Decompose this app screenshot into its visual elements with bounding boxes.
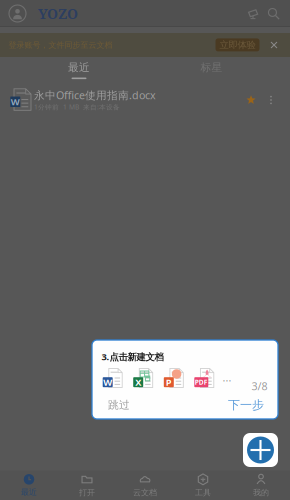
staticText: 永中Office使用指南.docx xyxy=(34,88,156,102)
button[interactable]: 我的 xyxy=(232,470,290,500)
staticText: W xyxy=(103,376,112,388)
staticText: 云文档 xyxy=(133,488,157,497)
button[interactable]: 最近 xyxy=(0,470,58,500)
staticText: X xyxy=(135,376,141,388)
button[interactable]: Search xyxy=(263,1,285,27)
staticText: 登录账号，文件同步至云文档 xyxy=(8,40,112,50)
staticText: YOZO xyxy=(38,4,78,23)
button[interactable]: 下一步 xyxy=(224,397,264,413)
button[interactable]: 立即体验 xyxy=(215,38,259,51)
button[interactable]: 跳过 xyxy=(108,397,138,413)
button[interactable]: 云文档 xyxy=(116,470,174,500)
staticText: 3/8 xyxy=(251,379,267,393)
staticText: 下一步 xyxy=(228,398,264,412)
staticText: W xyxy=(11,96,20,108)
staticText: P xyxy=(166,376,172,388)
button[interactable]: New Word document xyxy=(103,368,125,392)
button[interactable]: W xyxy=(0,82,290,118)
button[interactable]: 最近 xyxy=(12,58,145,82)
staticText: 跳过 xyxy=(108,398,130,411)
button[interactable]: New document xyxy=(243,433,278,467)
button[interactable]: New PDF xyxy=(194,368,216,392)
button[interactable]: 打开 xyxy=(58,470,116,500)
staticText: 立即体验 xyxy=(219,39,255,51)
button[interactable]: More document types xyxy=(219,368,235,392)
staticText: PDF xyxy=(195,378,208,387)
staticText: 打开 xyxy=(79,488,95,497)
staticText: 最近 xyxy=(21,487,37,497)
staticText: ··· xyxy=(222,373,231,387)
staticText: 工具 xyxy=(195,488,211,497)
staticText: 我的 xyxy=(253,488,269,497)
staticText: 3.点击新建文档 xyxy=(101,350,163,363)
button[interactable]: Star file xyxy=(241,82,261,118)
button[interactable]: New presentation xyxy=(164,368,186,392)
staticText: 1分钟前 1 MB 来自:本设备 xyxy=(34,102,120,111)
button[interactable]: More options xyxy=(262,82,280,118)
staticText: 标星 xyxy=(200,61,222,74)
button[interactable]: New spreadsheet xyxy=(133,368,155,392)
button[interactable]: 工具 xyxy=(174,470,232,500)
button[interactable]: Cast to screen xyxy=(241,1,265,27)
staticText: 最近 xyxy=(68,61,90,74)
button[interactable]: Account xyxy=(2,0,33,27)
button[interactable]: Dismiss banner xyxy=(264,33,284,57)
